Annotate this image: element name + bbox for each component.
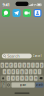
- button[interactable]: FaceTime: [23, 9, 31, 17]
- button[interactable]: f: [16, 69, 19, 74]
- staticText: n: [30, 76, 32, 80]
- staticText: z: [8, 76, 9, 80]
- staticText: u: [28, 63, 30, 67]
- button[interactable]: n: [29, 76, 33, 81]
- button[interactable]: Contacts: [33, 9, 41, 17]
- button[interactable]: w: [5, 63, 8, 68]
- staticText: g: [21, 70, 23, 73]
- button[interactable]: v: [20, 76, 24, 81]
- staticText: c: [17, 76, 18, 80]
- staticText: j: [30, 70, 31, 73]
- button[interactable]: Numbers: [0, 82, 6, 88]
- button[interactable]: Shift: [0, 76, 6, 81]
- staticText: t: [19, 63, 20, 67]
- button[interactable]: o: [35, 63, 39, 68]
- button[interactable]: Search: [35, 82, 43, 88]
- staticText: y: [24, 63, 25, 67]
- staticText: Search: [7, 53, 19, 59]
- button[interactable]: x: [11, 76, 15, 81]
- staticText: m: [35, 76, 37, 80]
- staticText: Cancel: [33, 54, 42, 58]
- button[interactable]: l: [38, 69, 41, 74]
- button[interactable]: g: [20, 69, 24, 74]
- button[interactable]: Telegram: [12, 9, 20, 17]
- button[interactable]: u: [27, 63, 30, 68]
- button[interactable]: WhatsApp: [2, 9, 10, 17]
- button[interactable]: space: [11, 82, 35, 88]
- button[interactable]: h: [25, 69, 28, 74]
- staticText: l: [39, 70, 40, 73]
- button[interactable]: c: [15, 76, 19, 81]
- staticText: i: [32, 63, 33, 67]
- button[interactable]: i: [31, 63, 35, 68]
- button[interactable]: r: [14, 63, 17, 68]
- staticText: search: [35, 83, 43, 87]
- staticText: o: [36, 63, 38, 67]
- button[interactable]: a: [3, 69, 6, 74]
- button[interactable]: Search: [2, 54, 32, 58]
- staticText: x: [12, 76, 13, 80]
- button[interactable]: e: [9, 63, 13, 68]
- staticText: p: [41, 63, 43, 67]
- staticText: b: [25, 76, 27, 80]
- staticText: f: [17, 70, 18, 73]
- staticText: r: [15, 63, 16, 67]
- staticText: k: [35, 70, 36, 73]
- button[interactable]: q: [0, 63, 4, 68]
- staticText: 123: [1, 81, 5, 89]
- button[interactable]: Next keyboard: [6, 82, 11, 88]
- button[interactable]: s: [7, 69, 11, 74]
- staticText: space: [20, 83, 27, 87]
- button[interactable]: b: [25, 76, 28, 81]
- staticText: e: [10, 63, 12, 67]
- button[interactable]: p: [40, 63, 43, 68]
- button[interactable]: Cancel: [32, 54, 42, 58]
- button[interactable]: z: [6, 76, 10, 81]
- staticText: 9:41: [3, 2, 10, 7]
- button[interactable]: t: [18, 63, 22, 68]
- staticText: w: [6, 63, 8, 67]
- button[interactable]: j: [29, 69, 32, 74]
- staticText: q: [1, 63, 3, 67]
- button[interactable]: m: [34, 76, 38, 81]
- staticText: d: [12, 70, 14, 73]
- staticText: a: [4, 70, 5, 73]
- staticText: h: [25, 70, 27, 73]
- button[interactable]: y: [22, 63, 26, 68]
- staticText: s: [8, 70, 9, 73]
- button[interactable]: d: [11, 69, 15, 74]
- button[interactable]: k: [33, 69, 37, 74]
- button[interactable]: Delete: [38, 76, 43, 81]
